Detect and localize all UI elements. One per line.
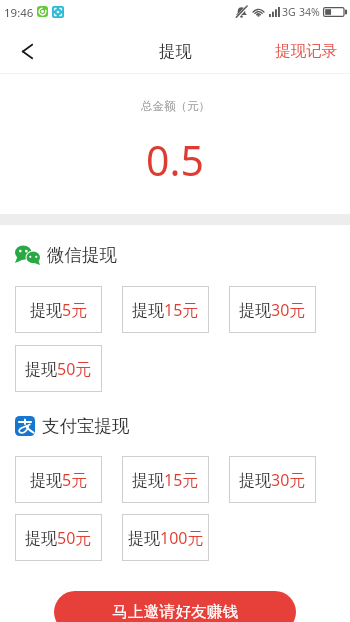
staticText: 支付宝提现 <box>42 415 130 437</box>
staticText: 提现15元 <box>132 299 199 321</box>
staticText: 0.5 <box>146 132 204 188</box>
staticText: 提现15元 <box>132 469 199 491</box>
button[interactable]: 提现50元 <box>15 514 102 561</box>
staticText: 提现30元 <box>239 469 306 491</box>
button[interactable]: 提现100元 <box>122 514 209 561</box>
staticText: 34% <box>299 5 320 19</box>
button[interactable]: 提现30元 <box>229 456 316 503</box>
staticText: 马上邀请好友赚钱 <box>112 602 239 622</box>
staticText: 19:46 <box>4 5 34 21</box>
staticText: 提现50元 <box>25 527 92 549</box>
staticText: 3G <box>282 5 296 19</box>
staticText: 总金额（元） <box>141 99 210 113</box>
button[interactable]: Back <box>3 27 51 75</box>
staticText: 提现5元 <box>30 299 88 321</box>
button[interactable]: 提现15元 <box>122 456 209 503</box>
button[interactable]: 提现50元 <box>15 345 102 392</box>
staticText: 微信提现 <box>47 244 117 266</box>
button[interactable]: 提现5元 <box>15 286 102 333</box>
button[interactable]: 提现记录 <box>262 29 350 73</box>
button[interactable]: 马上邀请好友赚钱 <box>54 591 296 622</box>
button[interactable]: 提现5元 <box>15 456 102 503</box>
staticText: 提现 <box>159 41 192 62</box>
button[interactable]: 提现15元 <box>122 286 209 333</box>
staticText: 提现5元 <box>30 469 88 491</box>
staticText: 提现100元 <box>128 527 204 549</box>
button[interactable]: 提现30元 <box>229 286 316 333</box>
staticText: 提现50元 <box>25 358 92 380</box>
staticText: 提现记录 <box>275 41 337 61</box>
staticText: 提现30元 <box>239 299 306 321</box>
